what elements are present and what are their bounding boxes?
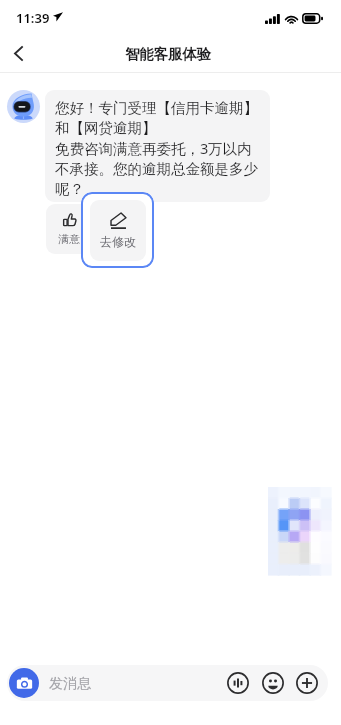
button[interactable]: More: [296, 672, 318, 694]
staticText: 满意: [58, 232, 80, 246]
staticText: 去修改: [100, 234, 136, 249]
staticText: 11:39: [16, 9, 50, 27]
button[interactable]: 去修改: [90, 200, 146, 261]
staticText: 发消息: [49, 675, 91, 693]
button[interactable]: Camera: [9, 668, 39, 698]
staticText: 智能客服体验: [125, 45, 211, 63]
button[interactable]: Back: [0, 37, 36, 70]
button[interactable]: Voice: [227, 672, 249, 694]
button[interactable]: Image: [268, 487, 331, 575]
button[interactable]: 去修改: [81, 192, 154, 268]
button[interactable]: 满意: [46, 204, 91, 254]
button[interactable]: Emoji: [262, 672, 284, 694]
staticText: 您好！专门受理【信用卡逾期】 和【网贷逾期】 免费咨询满意再委托，3万以内 不承…: [55, 99, 258, 198]
